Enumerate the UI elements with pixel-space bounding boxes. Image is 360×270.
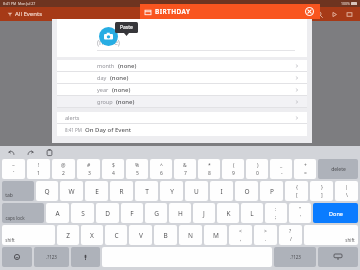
button[interactable]: C [105,225,127,245]
button[interactable]: group [57,96,307,107]
staticText: (none) [118,62,137,70]
staticText: ( [233,162,235,169]
button[interactable]: M [204,225,227,245]
staticText: # [87,162,91,169]
staticText: 9 [232,170,235,177]
staticText: T [145,187,149,196]
staticText: 4 [112,170,115,177]
button[interactable]: Redo [25,147,36,158]
staticText: M [213,231,219,240]
button[interactable]: ( [222,159,244,179]
button[interactable]: ~ [2,159,25,179]
button[interactable]: U [185,181,208,201]
button[interactable]: @ [52,159,75,179]
button[interactable]: Dictation [71,247,100,267]
button[interactable]: More options [344,9,355,20]
button[interactable]: K [217,203,239,223]
staticText: [ [296,192,298,199]
staticText: _ [280,162,283,169]
button[interactable]: W [60,181,83,201]
button[interactable]: Paste [44,147,55,158]
button[interactable]: B [154,225,177,245]
button[interactable]: < [229,225,252,245]
button[interactable]: G [145,203,167,223]
button[interactable]: shift [304,225,358,245]
staticText: S [81,209,85,218]
button[interactable]: } [310,181,333,201]
button[interactable]: $ [102,159,124,179]
button[interactable]: # [77,159,100,179]
staticText: All Events [15,10,43,18]
button[interactable]: " [289,203,311,223]
button[interactable]: H [169,203,191,223]
button[interactable]: Q [36,181,58,201]
button[interactable]: N [179,225,202,245]
button[interactable]: { [285,181,308,201]
staticText: - [281,170,283,177]
staticText: , [240,236,242,243]
button[interactable]: _ [270,159,292,179]
button[interactable]: .?123 [34,247,69,267]
staticText: 8 [208,170,211,177]
button[interactable]: L [241,203,263,223]
button[interactable]: T [135,181,158,201]
button[interactable]: | [335,181,358,201]
button[interactable]: caps lock [2,203,44,223]
button[interactable]: J [193,203,215,223]
button[interactable]: F [121,203,143,223]
staticText: delete [331,166,346,173]
button[interactable]: S [71,203,94,223]
button[interactable]: ? [279,225,302,245]
button[interactable]: R [110,181,133,201]
staticText: % [135,162,140,169]
button[interactable]: Add photo [99,27,118,46]
button[interactable]: % [126,159,148,179]
button[interactable]: E [85,181,108,201]
button[interactable]: Y [160,181,183,201]
button[interactable]: ) [246,159,268,179]
staticText: 8:41 PM [65,127,82,133]
button[interactable]: Close [304,6,315,17]
button[interactable]: Done [313,203,358,223]
staticText: @ [61,162,66,169]
button[interactable]: : [265,203,287,223]
button[interactable]: P [260,181,283,201]
button[interactable]: tab [2,181,34,201]
button[interactable]: delete [318,159,358,179]
button[interactable]: Play [329,9,340,20]
button[interactable]: Z [57,225,79,245]
button[interactable]: O [235,181,258,201]
button[interactable]: Emoji [2,247,32,267]
staticText: * [208,162,211,169]
button[interactable]: All Events filter [5,8,45,20]
button[interactable]: + [294,159,316,179]
staticText: ? [289,228,292,235]
button[interactable]: .?123 [274,247,316,267]
button[interactable]: X [81,225,103,245]
button[interactable]: Undo [6,147,17,158]
staticText: month [97,62,115,69]
button[interactable]: month [57,60,307,71]
button[interactable]: I [210,181,233,201]
button[interactable]: V [129,225,152,245]
staticText: . [265,236,267,243]
button[interactable]: alerts [57,112,307,123]
button[interactable]: * [198,159,220,179]
button[interactable]: D [96,203,119,223]
button[interactable]: year [57,84,307,95]
button[interactable]: day [57,72,307,83]
button[interactable]: Search [314,9,325,20]
button[interactable]: ^ [150,159,172,179]
button[interactable]: ! [27,159,50,179]
button[interactable]: 8:41 PM [57,124,307,136]
button[interactable]: > [254,225,277,245]
staticText: L [250,209,254,218]
button[interactable]: A [46,203,69,223]
button[interactable]: & [174,159,196,179]
staticText: = [304,170,307,177]
staticText: .?123 [290,254,301,260]
button[interactable]: Paste [115,22,138,33]
button[interactable]: Hide keyboard [318,247,358,267]
button[interactable]: shift [2,225,55,245]
